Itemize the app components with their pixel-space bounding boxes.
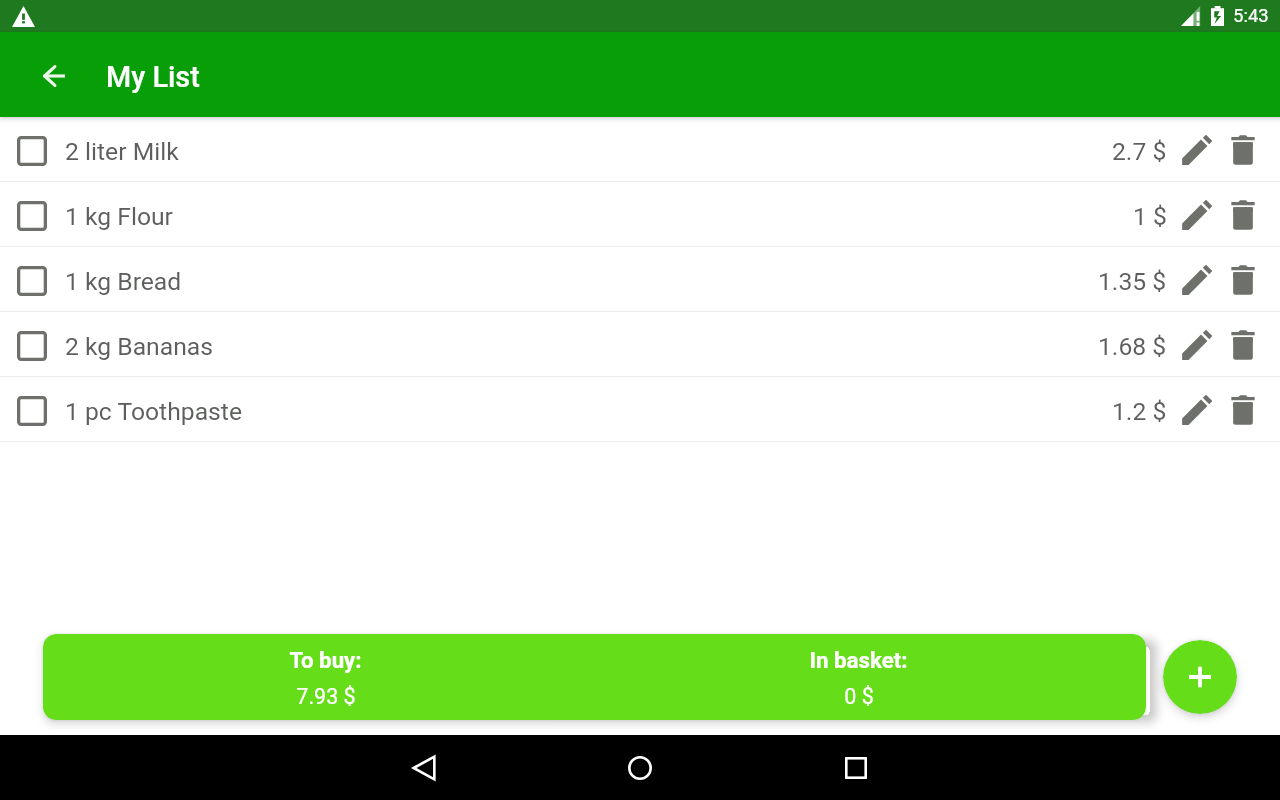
button[interactable]: Toggle 1 pc Toothpaste <box>0 377 64 441</box>
button[interactable]: To buy: <box>43 634 1146 720</box>
staticText: 2.7 $ <box>1112 137 1167 166</box>
button[interactable]: Delete <box>1220 377 1266 441</box>
button[interactable]: Edit <box>1174 312 1220 376</box>
staticText: 1 kg Flour <box>65 202 173 231</box>
button[interactable]: Edit <box>1174 182 1220 246</box>
button[interactable]: Add item <box>1163 640 1237 714</box>
staticText: 1.2 $ <box>1112 397 1167 426</box>
button[interactable]: Toggle 2 kg Bananas <box>0 312 1280 376</box>
button[interactable]: Delete <box>1220 247 1266 311</box>
button[interactable]: Toggle 1 kg Flour <box>0 182 1280 246</box>
staticText: 0 $ <box>844 684 874 709</box>
staticText: 5:43 <box>1233 5 1269 27</box>
staticText: My List <box>106 60 200 94</box>
staticText: In basket: <box>809 647 908 673</box>
button[interactable]: Delete <box>1220 312 1266 376</box>
button[interactable]: Edit <box>1174 377 1220 441</box>
button[interactable]: Toggle 1 kg Bread <box>0 247 64 311</box>
staticText: 1 $ <box>1133 202 1167 231</box>
staticText: 7.93 $ <box>296 684 356 709</box>
button[interactable]: Back <box>392 736 456 800</box>
staticText: 1.68 $ <box>1098 332 1167 361</box>
button[interactable]: Delete <box>1220 182 1266 246</box>
staticText: 2 kg Bananas <box>65 332 213 361</box>
button[interactable]: Toggle 2 liter Milk <box>0 117 64 181</box>
button[interactable]: Toggle 2 kg Bananas <box>0 312 64 376</box>
staticText: 1 pc Toothpaste <box>65 397 242 426</box>
staticText: 1 kg Bread <box>65 267 182 296</box>
staticText: 2 liter Milk <box>65 137 179 166</box>
button[interactable]: Toggle 1 kg Bread <box>0 247 1280 311</box>
button[interactable]: Toggle 1 kg Flour <box>0 182 64 246</box>
button[interactable]: Toggle 2 liter Milk <box>0 117 1280 181</box>
button[interactable]: Toggle 1 pc Toothpaste <box>0 377 1280 441</box>
button[interactable]: Delete <box>1220 117 1266 181</box>
button[interactable]: Edit <box>1174 117 1220 181</box>
button[interactable]: Home <box>608 736 672 800</box>
button[interactable]: Recent apps <box>824 736 888 800</box>
button[interactable]: Back <box>0 32 106 117</box>
button[interactable]: Edit <box>1174 247 1220 311</box>
staticText: To buy: <box>289 647 362 673</box>
staticText: 1.35 $ <box>1098 267 1167 296</box>
